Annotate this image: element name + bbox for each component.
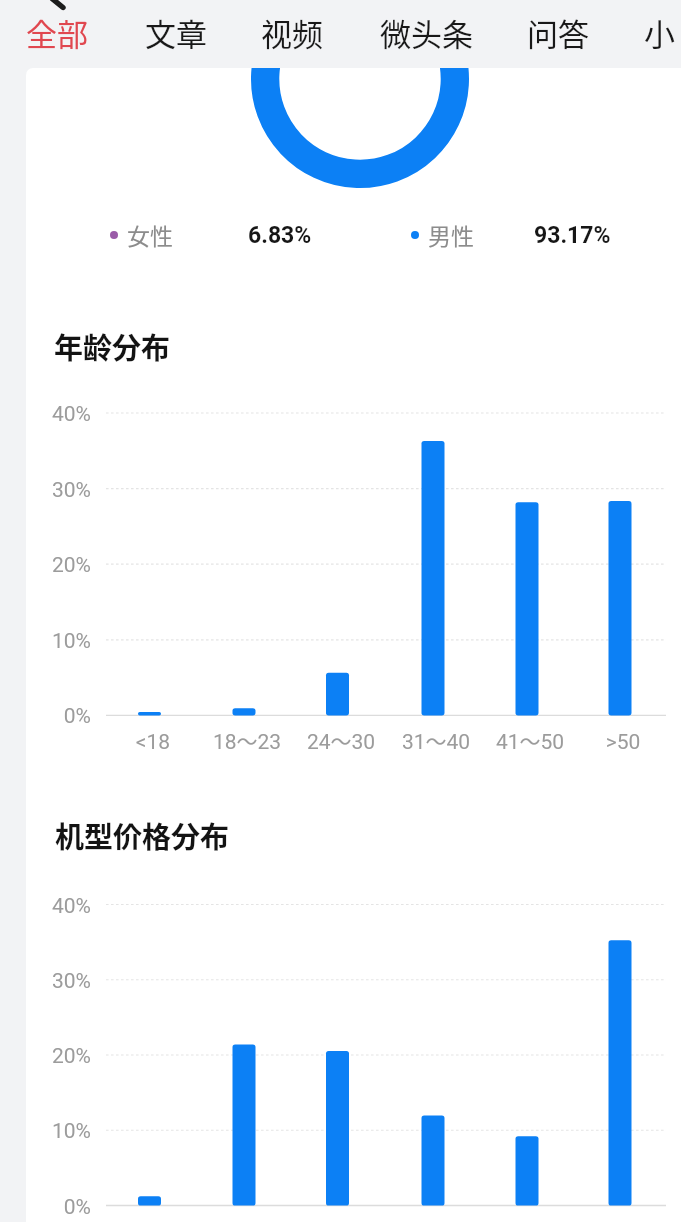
staticText: 31～40 bbox=[376, 725, 496, 755]
staticText: 视频 bbox=[261, 10, 323, 55]
staticText: 男性 bbox=[428, 218, 474, 251]
staticText: 40% bbox=[41, 894, 91, 919]
staticText: 微头条 bbox=[380, 10, 473, 55]
button[interactable]: 女性 bbox=[108, 216, 175, 253]
staticText: 20% bbox=[41, 553, 91, 578]
staticText: 30% bbox=[41, 969, 91, 994]
staticText: 41～50 bbox=[470, 725, 590, 755]
button[interactable]: 小 bbox=[636, 4, 681, 61]
staticText: 女性 bbox=[127, 218, 173, 251]
staticText: 0% bbox=[41, 1195, 91, 1220]
button[interactable]: 微头条 bbox=[372, 4, 481, 61]
staticText: 机型价格分布 bbox=[55, 814, 230, 856]
staticText: 文章 bbox=[145, 10, 207, 55]
staticText: 年龄分布 bbox=[54, 325, 171, 367]
staticText: 全部 bbox=[26, 10, 88, 55]
button[interactable]: 全部 bbox=[18, 4, 96, 61]
staticText: 小 bbox=[644, 10, 675, 55]
staticText: 30% bbox=[41, 478, 91, 503]
button[interactable]: 男性 bbox=[409, 216, 476, 253]
staticText: 10% bbox=[41, 1119, 91, 1144]
staticText: 0% bbox=[41, 704, 91, 729]
staticText: <18 bbox=[93, 725, 213, 755]
button[interactable]: 视频 bbox=[253, 4, 331, 61]
button[interactable]: 文章 bbox=[137, 4, 215, 61]
staticText: 6.83% bbox=[248, 222, 312, 249]
staticText: 20% bbox=[41, 1044, 91, 1069]
button[interactable]: 问答 bbox=[519, 4, 597, 61]
staticText: 10% bbox=[41, 629, 91, 654]
staticText: 24～30 bbox=[281, 725, 401, 755]
staticText: >50 bbox=[563, 725, 681, 755]
staticText: 18～23 bbox=[187, 725, 307, 755]
staticText: 问答 bbox=[527, 10, 589, 55]
staticText: 93.17% bbox=[534, 222, 611, 249]
staticText: 40% bbox=[41, 402, 91, 427]
